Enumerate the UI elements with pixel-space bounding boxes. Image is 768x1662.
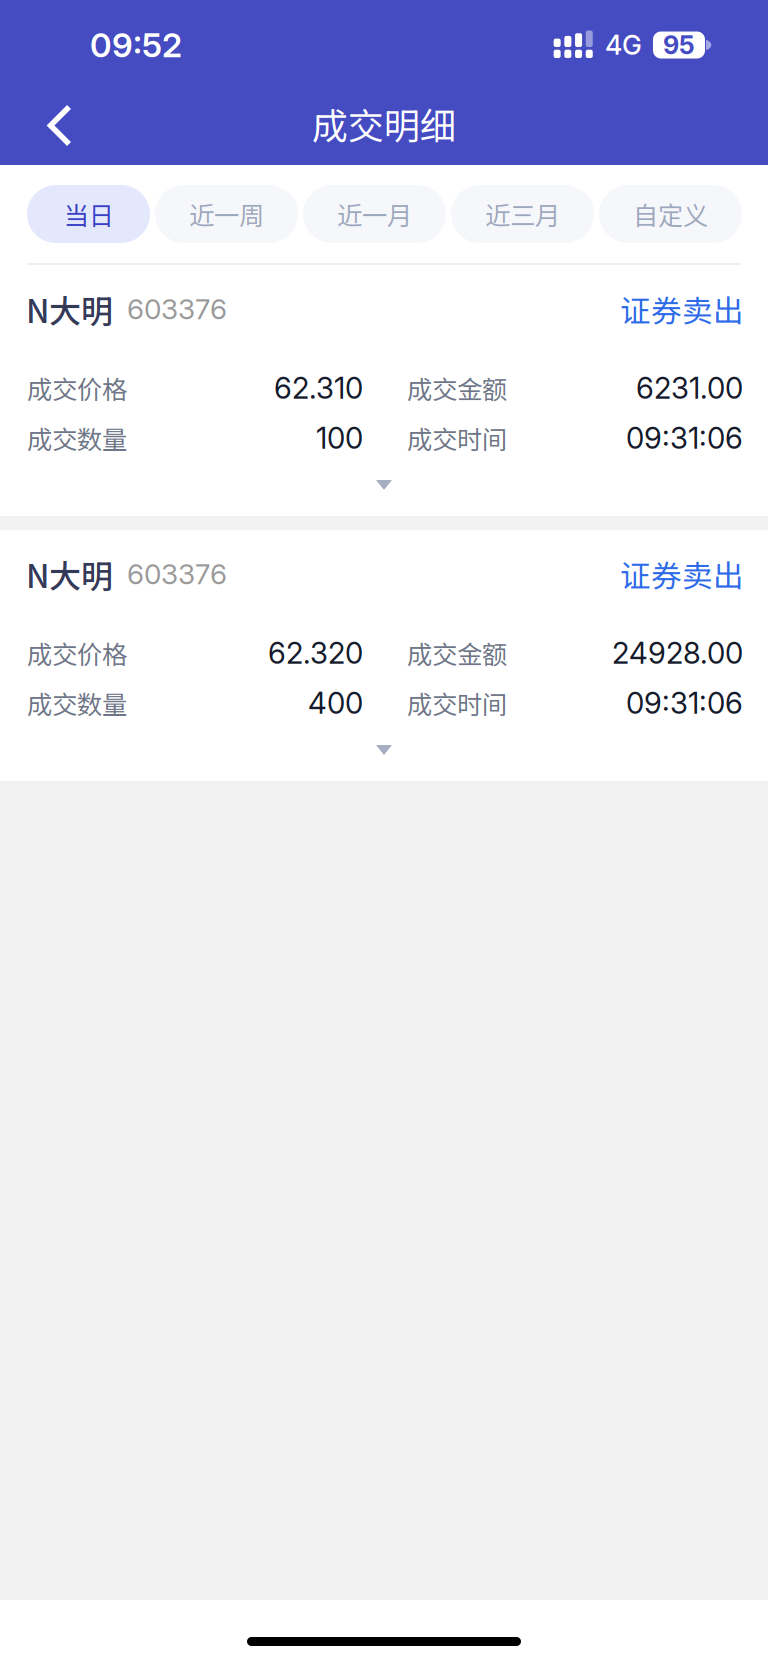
staticText: 4G (605, 29, 642, 61)
staticText: 62.310 (274, 370, 363, 406)
staticText: 成交价格 (27, 370, 127, 406)
button[interactable]: Back (23, 90, 97, 161)
staticText: 近一周 (189, 196, 264, 232)
staticText: 6231.00 (636, 370, 743, 406)
staticText: 成交金额 (407, 635, 507, 671)
staticText: 603376 (127, 292, 227, 326)
staticText: 成交金额 (407, 370, 507, 406)
staticText: 95 (663, 30, 695, 60)
staticText: 成交时间 (407, 685, 507, 721)
button[interactable]: 近一周 (155, 185, 298, 243)
staticText: N大明 (26, 551, 113, 597)
staticText: 24928.00 (612, 635, 743, 671)
staticText: 400 (308, 685, 363, 721)
staticText: 09:52 (90, 25, 182, 65)
staticText: 自定义 (633, 196, 708, 232)
staticText: 成交数量 (27, 685, 127, 721)
staticText: 09:31:06 (626, 420, 743, 456)
button[interactable]: 当日 (27, 185, 150, 243)
staticText: 证券卖出 (620, 287, 744, 331)
staticText: 100 (316, 420, 363, 456)
staticText: N大明 (26, 286, 113, 332)
button[interactable]: 证券卖出 (620, 287, 744, 331)
staticText: 近三月 (485, 196, 560, 232)
button[interactable]: Expand (0, 716, 768, 781)
button[interactable]: 证券卖出 (620, 552, 744, 596)
button[interactable]: 近一月 (303, 185, 446, 243)
staticText: 603376 (127, 557, 227, 591)
staticText: 成交时间 (407, 420, 507, 456)
staticText: 证券卖出 (620, 552, 744, 596)
staticText: 62.320 (268, 635, 363, 671)
button[interactable]: Expand (0, 451, 768, 516)
staticText: 当日 (63, 196, 113, 232)
button[interactable]: 近三月 (451, 185, 594, 243)
staticText: 成交数量 (27, 420, 127, 456)
staticText: 成交明细 (312, 97, 456, 149)
staticText: 近一月 (337, 196, 412, 232)
button[interactable]: 自定义 (599, 185, 742, 243)
staticText: 09:31:06 (626, 685, 743, 721)
staticText: 成交价格 (27, 635, 127, 671)
